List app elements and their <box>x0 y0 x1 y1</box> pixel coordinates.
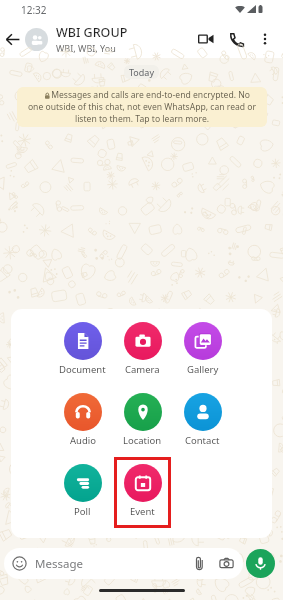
button[interactable]: Camera <box>219 556 234 571</box>
button[interactable]: More options <box>251 25 279 53</box>
staticText: Gallery <box>187 363 219 376</box>
button[interactable]: Gallery <box>174 309 231 380</box>
button[interactable]: Messages and calls are end-to-end encryp… <box>17 87 267 127</box>
staticText: Event <box>130 505 155 518</box>
staticText: Messages and calls are end-to-end encryp… <box>26 89 258 125</box>
button[interactable]: Audio <box>54 380 111 451</box>
button[interactable]: Poll <box>54 451 111 522</box>
button[interactable]: Video call <box>191 24 221 54</box>
button[interactable]: Voice message <box>246 549 275 578</box>
staticText: 12:32 <box>21 3 47 17</box>
button[interactable]: Voice call <box>221 24 251 54</box>
staticText: Contact <box>185 434 220 447</box>
staticText: WBI, WBI, You <box>56 42 116 54</box>
staticText: Message <box>35 556 83 572</box>
button[interactable]: Contact <box>174 380 231 451</box>
staticText: Document <box>59 363 106 376</box>
staticText: WBI GROUP <box>56 24 128 41</box>
staticText: Location <box>123 434 162 447</box>
staticText: Audio <box>70 434 96 447</box>
button[interactable]: Message <box>4 548 243 579</box>
staticText: Camera <box>125 363 160 376</box>
button[interactable]: Camera <box>114 309 171 380</box>
button[interactable]: Today <box>124 65 159 79</box>
button[interactable]: Group photo <box>25 28 48 51</box>
button[interactable]: Location <box>114 380 171 451</box>
button[interactable]: Event <box>114 451 171 522</box>
button[interactable]: Attach <box>192 556 207 571</box>
staticText: Today <box>129 66 154 78</box>
button[interactable]: Document <box>54 309 111 380</box>
button[interactable]: Back <box>2 29 22 49</box>
staticText: Poll <box>74 505 91 518</box>
